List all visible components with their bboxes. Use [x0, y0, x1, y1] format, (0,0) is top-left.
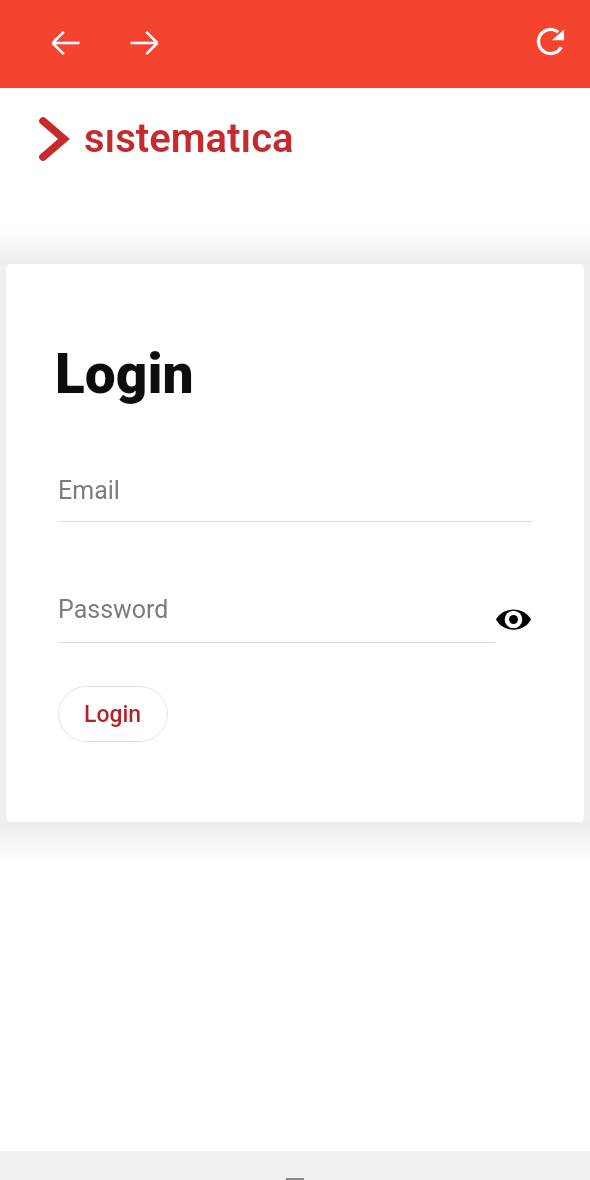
staticText: sıstematıca [84, 115, 294, 162]
button[interactable]: sıstematıca [30, 108, 269, 170]
button[interactable]: Tabs [278, 1168, 312, 1180]
staticText: Login [84, 701, 142, 728]
button[interactable]: Forward [117, 16, 170, 69]
button[interactable]: Login [58, 686, 168, 742]
button[interactable]: Password [58, 581, 495, 643]
button[interactable]: Show password [493, 599, 533, 639]
button[interactable]: Reload page [524, 15, 577, 68]
button[interactable]: Back [39, 16, 92, 69]
staticText: Login [55, 342, 194, 406]
button[interactable]: Email [58, 460, 532, 522]
staticText: Email [58, 476, 120, 505]
staticText: Password [58, 595, 169, 624]
